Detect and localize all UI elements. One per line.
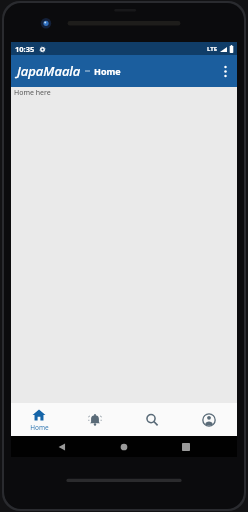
button[interactable]: Recent apps bbox=[175, 436, 197, 457]
button[interactable]: Account bbox=[180, 403, 237, 436]
button[interactable]: Back bbox=[51, 436, 73, 457]
staticText: LTE bbox=[207, 45, 218, 53]
staticText: Home bbox=[94, 65, 121, 77]
staticText: 10:35 bbox=[15, 44, 35, 54]
staticText: Home here bbox=[14, 88, 51, 98]
button[interactable]: Home bbox=[11, 403, 67, 436]
button[interactable]: More options bbox=[213, 59, 237, 83]
button[interactable]: Home bbox=[113, 436, 135, 457]
staticText: Home bbox=[30, 423, 49, 432]
staticText: JapaMaala bbox=[17, 62, 81, 80]
button[interactable]: Notifications bbox=[67, 403, 123, 436]
button[interactable]: Search bbox=[123, 403, 180, 436]
